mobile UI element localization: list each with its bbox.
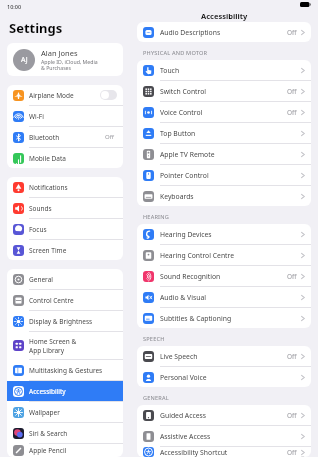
staticText: Assistive Access [160,432,211,441]
button[interactable]: Airplane Mode [7,85,123,105]
button[interactable]: Sounds [7,198,123,218]
button[interactable]: Sound Recognition [137,266,311,286]
button[interactable]: Accessibility [7,381,123,401]
staticText: Hearing Devices [160,230,212,239]
button[interactable]: Screen Time [7,240,123,260]
staticText: Home Screen & [29,337,77,346]
staticText: Display & Brightness [29,317,93,326]
button[interactable]: Accessibility Shortcut [137,447,311,457]
staticText: Live Speech [160,352,198,361]
button[interactable]: Apple TV Remote [137,144,311,164]
staticText: Mobile Data [29,154,66,163]
button[interactable]: Assistive Access [137,426,311,446]
button[interactable]: Personal Voice [137,367,311,387]
staticText: Top Button [160,129,196,138]
staticText: Airplane Mode [29,91,74,100]
button[interactable]: Audio & Visual [137,287,311,307]
staticText: Off [287,352,297,361]
button[interactable]: General [7,269,123,289]
button[interactable]: Switch Control [137,81,311,101]
button[interactable]: Keyboards [137,186,311,206]
staticText: Sound Recognition [160,272,221,281]
button[interactable]: Siri & Search [7,423,123,443]
button[interactable]: Notifications [7,177,123,197]
staticText: Apple ID, iCloud, Media & Purchases [41,58,98,71]
staticText: Hearing Control Centre [160,251,235,260]
staticText: Keyboards [160,192,194,201]
staticText: Alan Jones [41,48,78,58]
staticText: Pointer Control [160,171,209,180]
staticText: Bluetooth [29,133,60,142]
staticText: Off [287,272,297,281]
staticText: Off [287,108,297,117]
staticText: AJ [21,55,28,65]
button[interactable]: AJ [7,43,123,76]
staticText: Wallpaper [29,408,60,417]
staticText: Off [287,87,297,96]
staticText: Personal Voice [160,373,207,382]
staticText: Apple TV Remote [160,150,215,159]
staticText: Notifications [29,183,68,192]
button[interactable]: Focus [7,219,123,239]
button[interactable]: Bluetooth [7,127,123,147]
staticText: Accessibility Shortcut [160,448,228,457]
staticText: Accessibility [29,387,66,396]
staticText: Screen Time [29,246,67,255]
button[interactable]: Audio Descriptions [137,22,311,42]
staticText: GENERAL [143,394,169,402]
staticText: Focus [29,225,47,234]
button[interactable]: Wi-Fi [7,106,123,126]
button[interactable]: Touch [137,60,311,80]
staticText: Subtitles & Captioning [160,314,232,323]
staticText: Switch Control [160,87,207,96]
staticText: Off [287,28,297,37]
staticText: Accessibility [201,11,248,21]
staticText: HEARING [143,213,169,221]
button[interactable]: Hearing Devices [137,224,311,244]
staticText: Off [287,448,297,457]
button[interactable]: Guided Access [137,405,311,425]
staticText: Off [287,411,297,420]
staticText: 10:00 [7,3,22,10]
staticText: PHYSICAL AND MOTOR [143,49,208,57]
staticText: Siri & Search [29,429,68,438]
staticText: Guided Access [160,411,207,420]
button[interactable]: Hearing Control Centre [137,245,311,265]
staticText: Sounds [29,204,52,213]
staticText: App Library [29,346,65,355]
staticText: Touch [160,66,180,75]
button[interactable]: Live Speech [137,346,311,366]
staticText: Multitasking & Gestures [29,366,103,375]
button[interactable]: Subtitles & Captioning [137,308,311,328]
button[interactable]: Mobile Data [7,148,123,168]
button[interactable]: Top Button [137,123,311,143]
staticText: SPEECH [143,335,165,343]
button[interactable]: Display & Brightness [7,311,123,331]
button[interactable]: Multitasking & Gestures [7,360,123,380]
staticText: Off [105,133,114,141]
staticText: Audio & Visual [160,293,206,302]
button[interactable]: Home Screen & [7,332,123,359]
staticText: Control Centre [29,296,74,305]
staticText: Audio Descriptions [160,28,221,37]
staticText: Apple Pencil [29,446,67,455]
button[interactable]: Pointer Control [137,165,311,185]
staticText: Voice Control [160,108,203,117]
button[interactable]: Wallpaper [7,402,123,422]
staticText: Wi-Fi [29,112,44,121]
button[interactable]: Apple Pencil [7,444,123,457]
staticText: General [29,275,53,284]
staticText: Settings [9,19,63,37]
button[interactable]: Voice Control [137,102,311,122]
button[interactable]: Control Centre [7,290,123,310]
